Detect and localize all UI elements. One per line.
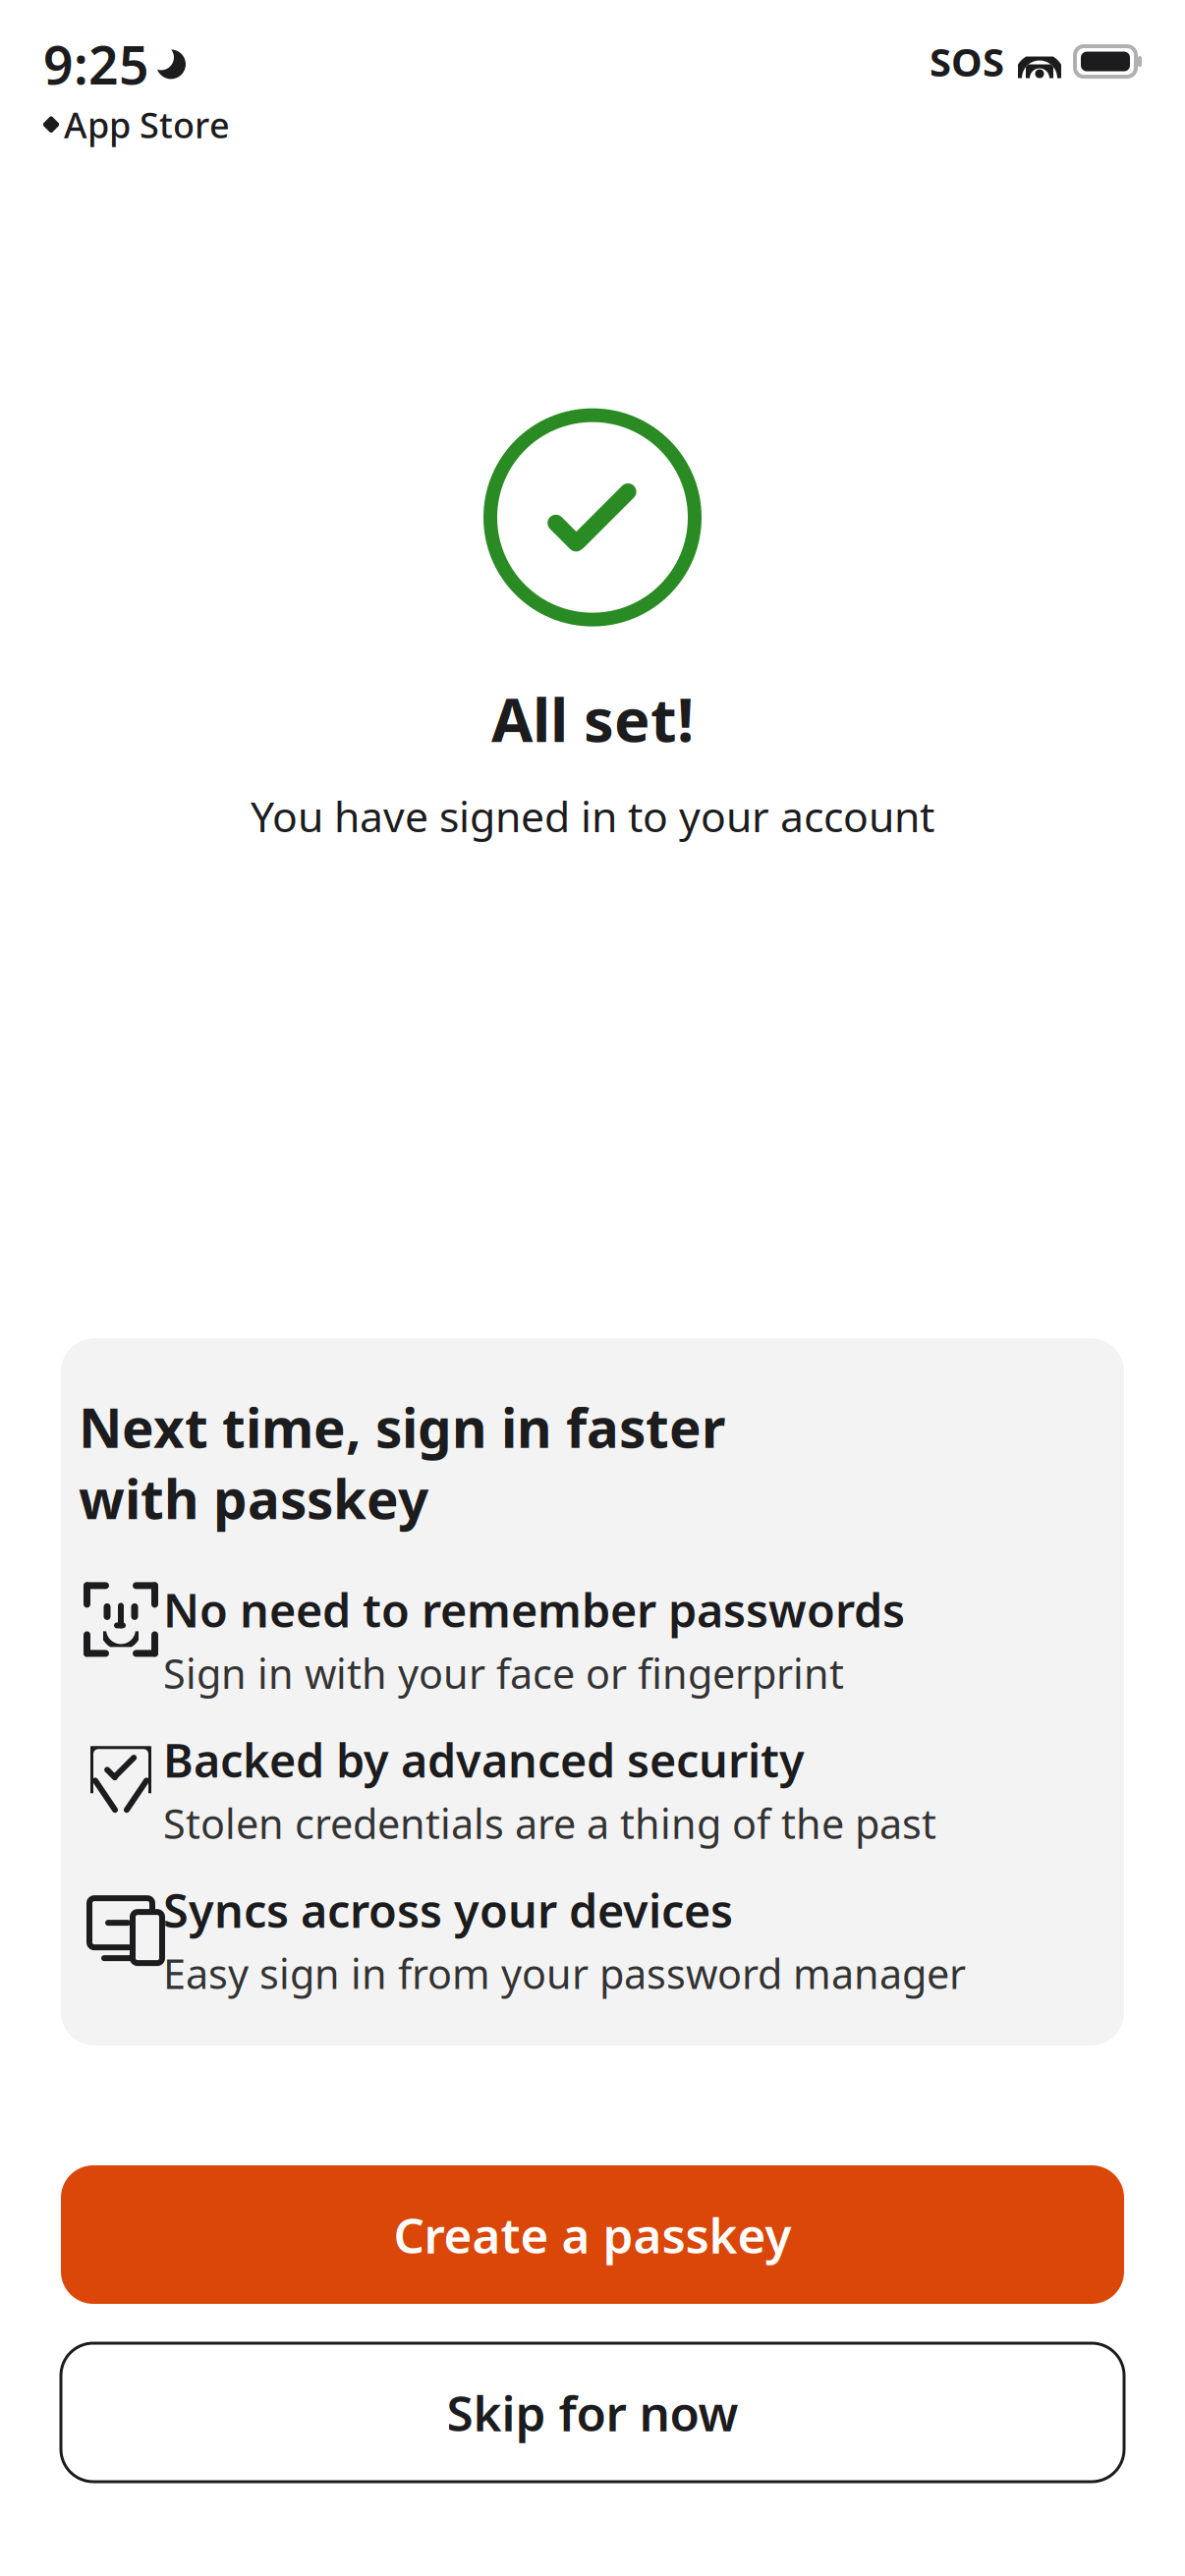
- staticText: Next time, sign in faster: [79, 1391, 725, 1463]
- staticText: You have signed in to your account: [251, 788, 934, 844]
- staticText: with passkey: [79, 1463, 428, 1534]
- staticText: 9:25: [43, 29, 149, 99]
- staticText: Skip for now: [447, 2380, 738, 2445]
- staticText: Syncs across your devices: [163, 1880, 733, 1940]
- staticText: All set!: [491, 678, 694, 758]
- staticText: No need to remember passwords: [163, 1579, 905, 1640]
- button[interactable]: Create a passkey: [61, 2165, 1124, 2304]
- staticText: Sign in with your face or fingerprint: [163, 1646, 844, 1700]
- staticText: App Store: [64, 101, 230, 148]
- staticText: Create a passkey: [394, 2202, 791, 2267]
- staticText: Stolen credentials are a thing of the pa…: [163, 1796, 936, 1850]
- button[interactable]: Skip for now: [61, 2343, 1124, 2482]
- staticText: SOS: [930, 35, 1004, 88]
- staticText: Backed by advanced security: [163, 1729, 805, 1790]
- staticText: Easy sign in from your password manager: [163, 1946, 966, 2000]
